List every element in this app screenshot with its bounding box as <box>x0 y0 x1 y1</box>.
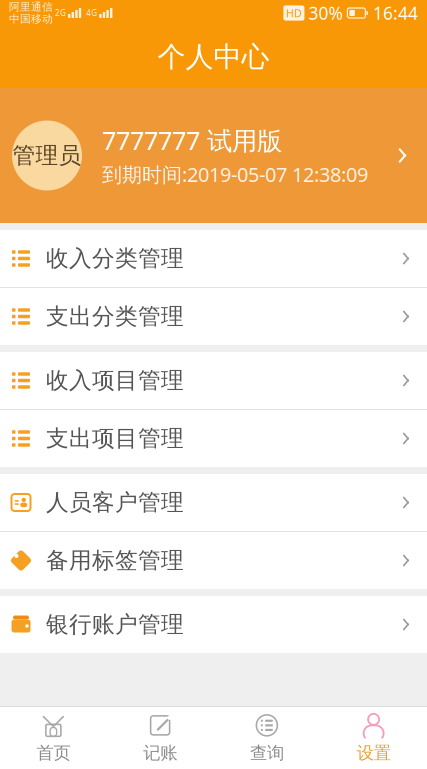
button[interactable]: 记账 <box>107 707 214 769</box>
staticText: 收入分类管理 <box>46 245 184 272</box>
staticText: 支出分类管理 <box>46 303 184 330</box>
staticText: 设置 <box>357 742 391 764</box>
button[interactable]: 首页 <box>0 707 107 769</box>
staticText: 阿里通信 <box>9 0 53 13</box>
button[interactable]: 银行账户管理 <box>0 596 427 653</box>
button[interactable]: 收入项目管理 <box>0 352 427 410</box>
staticText: 管理员 <box>12 142 81 169</box>
button[interactable]: 支出项目管理 <box>0 410 427 467</box>
button[interactable]: 查询 <box>213 707 320 769</box>
staticText: 收入项目管理 <box>46 367 184 394</box>
staticText: 4G <box>86 8 97 18</box>
staticText: 2G <box>55 8 66 18</box>
staticText: 中国移动 <box>9 12 53 26</box>
staticText: 人员客户管理 <box>46 489 184 516</box>
staticText: 到期时间:2019-05-07 12:38:09 <box>102 161 368 188</box>
staticText: 7777777 试用版 <box>102 123 282 157</box>
button[interactable]: 人员客户管理 <box>0 474 427 532</box>
button[interactable]: 收入分类管理 <box>0 230 427 288</box>
staticText: 记账 <box>143 742 177 764</box>
staticText: 30% <box>308 1 342 24</box>
staticText: HD <box>286 6 302 20</box>
button[interactable]: 设置 <box>320 707 427 769</box>
button[interactable]: 支出分类管理 <box>0 288 427 345</box>
staticText: 备用标签管理 <box>46 547 184 574</box>
staticText: 首页 <box>36 742 70 764</box>
staticText: 查询 <box>250 742 284 764</box>
staticText: 16:44 <box>373 1 418 24</box>
button[interactable]: 备用标签管理 <box>0 532 427 589</box>
button[interactable]: 管理员 <box>0 88 427 223</box>
staticText: 银行账户管理 <box>46 611 184 638</box>
staticText: 支出项目管理 <box>46 425 184 452</box>
staticText: 个人中心 <box>157 40 269 74</box>
